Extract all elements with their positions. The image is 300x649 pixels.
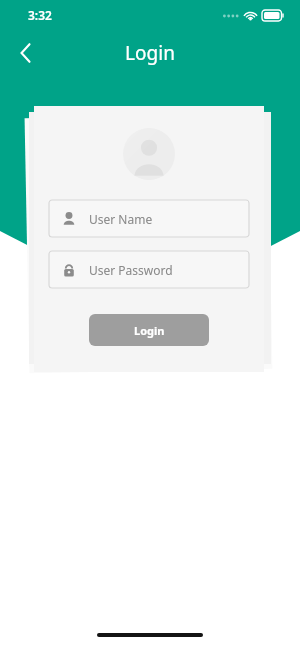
staticText: User Password bbox=[89, 262, 173, 278]
staticText: Login bbox=[125, 40, 175, 66]
button[interactable]: Back bbox=[6, 33, 46, 73]
staticText: 3:32 bbox=[28, 7, 52, 23]
staticText: User Name bbox=[89, 211, 153, 227]
button[interactable]: Login bbox=[89, 314, 209, 346]
button[interactable]: User Name bbox=[48, 200, 250, 237]
staticText: Login bbox=[134, 323, 165, 338]
button[interactable]: User Password bbox=[48, 251, 250, 288]
